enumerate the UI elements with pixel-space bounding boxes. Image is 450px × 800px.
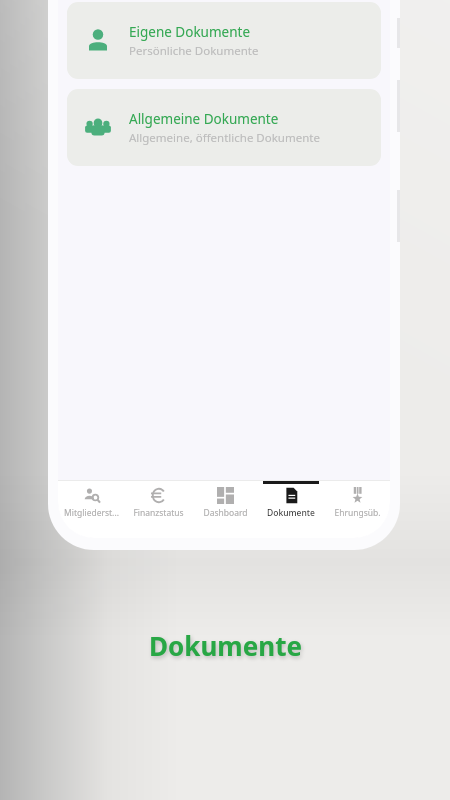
button[interactable]: Dashboard [192,480,258,538]
button[interactable]: Eigene Dokumente [67,2,381,79]
button[interactable]: Finanzstatus [125,480,192,538]
button[interactable]: Dokumente [258,480,324,538]
staticText: Dashboard [203,507,248,519]
staticText: Dokumente [267,507,315,519]
staticText: Finanzstatus [133,507,184,519]
staticText: Mitgliederst... [64,507,119,519]
staticText: Ehrungsüb. [334,507,381,519]
staticText: Allgemeine Dokumente [129,110,279,128]
button[interactable]: Mitgliederst... [58,480,125,538]
staticText: Allgemeine, öffentliche Dokumente [129,130,320,146]
staticText: Dokumente [149,628,302,663]
staticText: Persönliche Dokumente [129,43,259,59]
button[interactable]: Allgemeine Dokumente [67,89,381,166]
button[interactable]: Ehrungsüb. [324,480,390,538]
staticText: Eigene Dokumente [129,23,251,41]
